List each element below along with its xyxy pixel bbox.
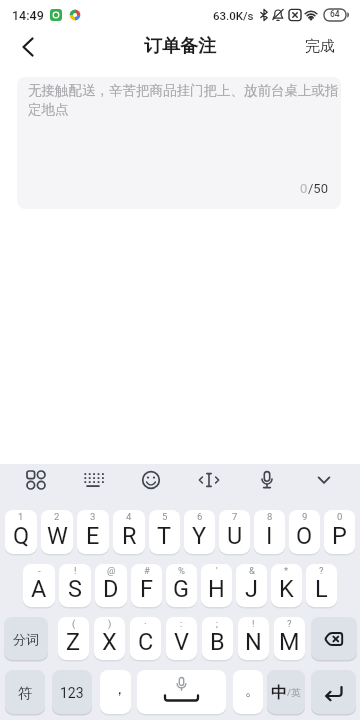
staticText: F <box>140 575 153 603</box>
staticText: 5 <box>162 511 168 522</box>
staticText: - <box>38 565 41 576</box>
staticText: N <box>245 628 262 656</box>
button[interactable] <box>71 464 115 496</box>
button[interactable]: · <box>130 617 161 661</box>
staticText: 2 <box>54 511 60 522</box>
button[interactable] <box>245 464 289 496</box>
button[interactable]: 4 <box>113 510 145 555</box>
staticText: : <box>180 618 183 629</box>
staticText: L <box>315 575 328 603</box>
button[interactable]: 6 <box>184 510 215 555</box>
staticText: V <box>174 628 189 656</box>
staticText: /英 <box>287 687 301 699</box>
staticText: 0 <box>300 181 308 196</box>
staticText: 9 <box>302 511 308 522</box>
button[interactable] <box>311 670 356 715</box>
button[interactable] <box>14 464 58 496</box>
staticText: /50 <box>308 181 328 196</box>
button[interactable]: 2 <box>41 510 73 555</box>
staticText: ! <box>74 565 77 576</box>
staticText: · <box>144 618 147 629</box>
button[interactable]: - <box>23 564 55 608</box>
button[interactable] <box>311 617 357 661</box>
staticText: Q <box>13 522 30 550</box>
staticText: P <box>332 522 347 550</box>
staticText: 。 <box>245 681 260 700</box>
staticText: 7 <box>232 511 238 522</box>
staticText: 4 <box>126 511 132 522</box>
button[interactable]: 。 <box>233 670 263 715</box>
staticText: ， <box>112 680 127 699</box>
button[interactable]: ! <box>59 564 91 608</box>
staticText: U <box>227 522 243 550</box>
button[interactable]: 完成 <box>305 37 335 56</box>
staticText: G <box>173 575 190 603</box>
button[interactable] <box>302 464 346 496</box>
button[interactable]: 9 <box>289 510 320 555</box>
staticText: H <box>208 575 225 603</box>
button[interactable]: & <box>236 564 267 608</box>
staticText: ? <box>287 618 292 629</box>
button[interactable]: 无接触配送，辛苦把商品挂门把上、放前台桌上或指 定地点 <box>17 77 341 209</box>
staticText: 无接触配送，辛苦把商品挂门把上、放前台桌上或指 定地点 <box>28 82 339 118</box>
staticText: 分词 <box>13 631 39 647</box>
staticText: W <box>47 522 68 550</box>
button[interactable]: ? <box>274 617 305 661</box>
staticText: R <box>122 522 137 550</box>
staticText: X <box>102 628 117 656</box>
button[interactable]: * <box>271 564 302 608</box>
button[interactable] <box>137 670 226 715</box>
button[interactable]: 分词 <box>4 617 48 661</box>
staticText: S <box>68 575 82 603</box>
button[interactable] <box>12 30 44 63</box>
staticText: K <box>279 575 294 603</box>
staticText: B <box>210 628 225 656</box>
staticText: 14:49 <box>12 8 44 23</box>
button[interactable]: ? <box>306 564 337 608</box>
staticText: O <box>296 522 313 550</box>
button[interactable]: 符 <box>5 670 45 715</box>
staticText: 123 <box>60 685 84 701</box>
staticText: 63.0K/s <box>213 9 254 22</box>
staticText: ! <box>252 618 255 629</box>
staticText: @ <box>107 565 116 576</box>
button[interactable]: 123 <box>52 670 92 715</box>
staticText: E <box>86 522 100 550</box>
button[interactable]: : <box>166 617 197 661</box>
button[interactable] <box>187 464 231 496</box>
staticText: ( <box>72 618 76 629</box>
staticText: M <box>279 628 300 656</box>
button[interactable]: # <box>131 564 162 608</box>
button[interactable]: ， <box>100 670 131 715</box>
button[interactable]: ( <box>58 617 89 661</box>
staticText: 3 <box>90 511 96 522</box>
button[interactable]: 7 <box>219 510 250 555</box>
button[interactable]: ) <box>94 617 125 661</box>
button[interactable]: % <box>166 564 197 608</box>
staticText: T <box>157 522 172 550</box>
staticText: * <box>284 565 289 576</box>
staticText: & <box>249 565 255 576</box>
button[interactable]: 0 <box>324 510 355 555</box>
staticText: 6 <box>197 511 203 522</box>
staticText: I <box>266 522 273 550</box>
staticText: C <box>138 628 154 656</box>
staticText: 64 <box>330 9 340 19</box>
button[interactable]: @ <box>95 564 127 608</box>
staticText: 8 <box>267 511 273 522</box>
button[interactable]: 3 <box>77 510 109 555</box>
staticText: 0 <box>337 511 343 522</box>
staticText: ) <box>108 618 112 629</box>
button[interactable]: 1 <box>5 510 37 555</box>
button[interactable] <box>129 464 173 496</box>
staticText: 完成 <box>305 37 335 56</box>
button[interactable]: ; <box>202 617 233 661</box>
staticText: D <box>103 575 119 603</box>
button[interactable]: ' <box>201 564 232 608</box>
button[interactable]: ! <box>238 617 269 661</box>
button[interactable]: 5 <box>149 510 180 555</box>
button[interactable]: 8 <box>254 510 285 555</box>
staticText: 中 <box>271 683 287 703</box>
staticText: % <box>178 565 185 576</box>
button[interactable]: 中 <box>267 670 305 715</box>
